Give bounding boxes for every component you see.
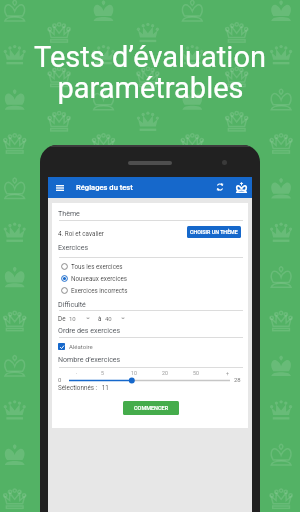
button[interactable]: Menu — [56, 185, 64, 191]
staticText: Exercices incorrects — [71, 287, 128, 294]
staticText: Difficulté — [58, 300, 86, 308]
button[interactable]: COMMENCER — [123, 401, 179, 415]
staticText: Nombre d’exercices — [58, 355, 121, 363]
staticText: Tests d’évaluation — [34, 40, 266, 74]
button[interactable]: Nouveaux exercices — [61, 273, 171, 283]
button[interactable]: Tous les exercices — [61, 261, 171, 271]
staticText: CHOISIR UN THÈME — [190, 229, 238, 235]
staticText: 0 — [58, 376, 62, 383]
staticText: 28 — [234, 376, 241, 383]
staticText: 20 — [162, 370, 168, 376]
staticText: · — [76, 370, 78, 376]
staticText: 50 — [193, 370, 199, 376]
staticText: paramétrables — [57, 71, 244, 105]
staticText: 4. Roi et cavalier — [58, 230, 104, 237]
staticText: 10 — [131, 370, 137, 376]
staticText: 10 — [69, 315, 76, 322]
button[interactable]: Aléatoire — [58, 342, 93, 350]
staticText: Aléatoire — [69, 343, 93, 350]
staticText: à — [98, 315, 102, 322]
staticText: Ordre des exercices — [58, 326, 121, 334]
staticText: Sélectionnés : 11 — [58, 384, 109, 391]
staticText: Thème — [58, 209, 80, 217]
staticText: 40 — [105, 315, 112, 322]
button[interactable]: Chess app logo — [236, 182, 247, 193]
staticText: Tous les exercices — [71, 263, 123, 270]
staticText: Exercices — [58, 243, 89, 251]
staticText: COMMENCER — [134, 405, 169, 411]
staticText: De — [58, 315, 66, 322]
staticText: 5 — [101, 370, 104, 376]
staticText: + — [226, 370, 229, 376]
staticText: Nouveaux exercices — [71, 275, 128, 282]
staticText: Réglages du test — [76, 183, 133, 192]
button[interactable]: Refresh — [216, 183, 224, 191]
button[interactable]: CHOISIR UN THÈME — [187, 226, 241, 238]
button[interactable] — [67, 376, 232, 385]
button[interactable]: Exercices incorrects — [61, 285, 171, 295]
